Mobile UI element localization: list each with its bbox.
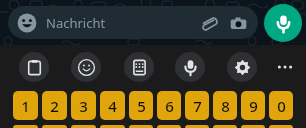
button[interactable] <box>157 125 181 128</box>
button[interactable]: Emoji <box>71 52 101 82</box>
button[interactable] <box>185 125 209 128</box>
button[interactable] <box>129 125 153 128</box>
button[interactable] <box>13 125 38 128</box>
button[interactable]: 8 <box>213 91 237 120</box>
staticText: 1 <box>21 96 30 116</box>
staticText: 4 <box>108 96 117 116</box>
button[interactable]: 9 <box>241 91 265 120</box>
staticText: 0 <box>277 96 286 116</box>
button[interactable]: 5 <box>129 91 153 120</box>
button[interactable] <box>42 125 67 128</box>
button[interactable] <box>213 125 237 128</box>
staticText: 7 <box>193 96 202 116</box>
button[interactable] <box>269 125 293 128</box>
button[interactable]: Voice input <box>175 52 205 82</box>
button[interactable]: 4 <box>100 91 125 120</box>
staticText: 2 <box>50 96 59 116</box>
button[interactable]: Keyboard modes <box>124 52 154 82</box>
button[interactable]: Camera <box>225 10 251 36</box>
button[interactable]: 7 <box>185 91 209 120</box>
button[interactable]: Emoji <box>17 13 37 33</box>
button[interactable]: 1 <box>13 91 38 120</box>
button[interactable]: 3 <box>71 91 96 120</box>
button[interactable]: More options <box>270 52 300 82</box>
button[interactable]: 2 <box>42 91 67 120</box>
button[interactable]: 6 <box>157 91 181 120</box>
button[interactable]: 0 <box>269 91 293 120</box>
staticText: Nachricht <box>46 14 106 32</box>
staticText: 3 <box>79 96 88 116</box>
button[interactable]: Voice message <box>264 4 302 42</box>
staticText: 8 <box>221 96 230 116</box>
button[interactable]: Emoji <box>8 6 258 39</box>
button[interactable] <box>100 125 125 128</box>
button[interactable] <box>241 125 265 128</box>
staticText: 9 <box>249 96 258 116</box>
button[interactable]: Attach <box>195 10 221 36</box>
staticText: 6 <box>165 96 174 116</box>
button[interactable]: Clipboard <box>19 52 49 82</box>
button[interactable]: Settings <box>227 52 257 82</box>
button[interactable] <box>71 125 96 128</box>
staticText: 5 <box>137 96 146 116</box>
